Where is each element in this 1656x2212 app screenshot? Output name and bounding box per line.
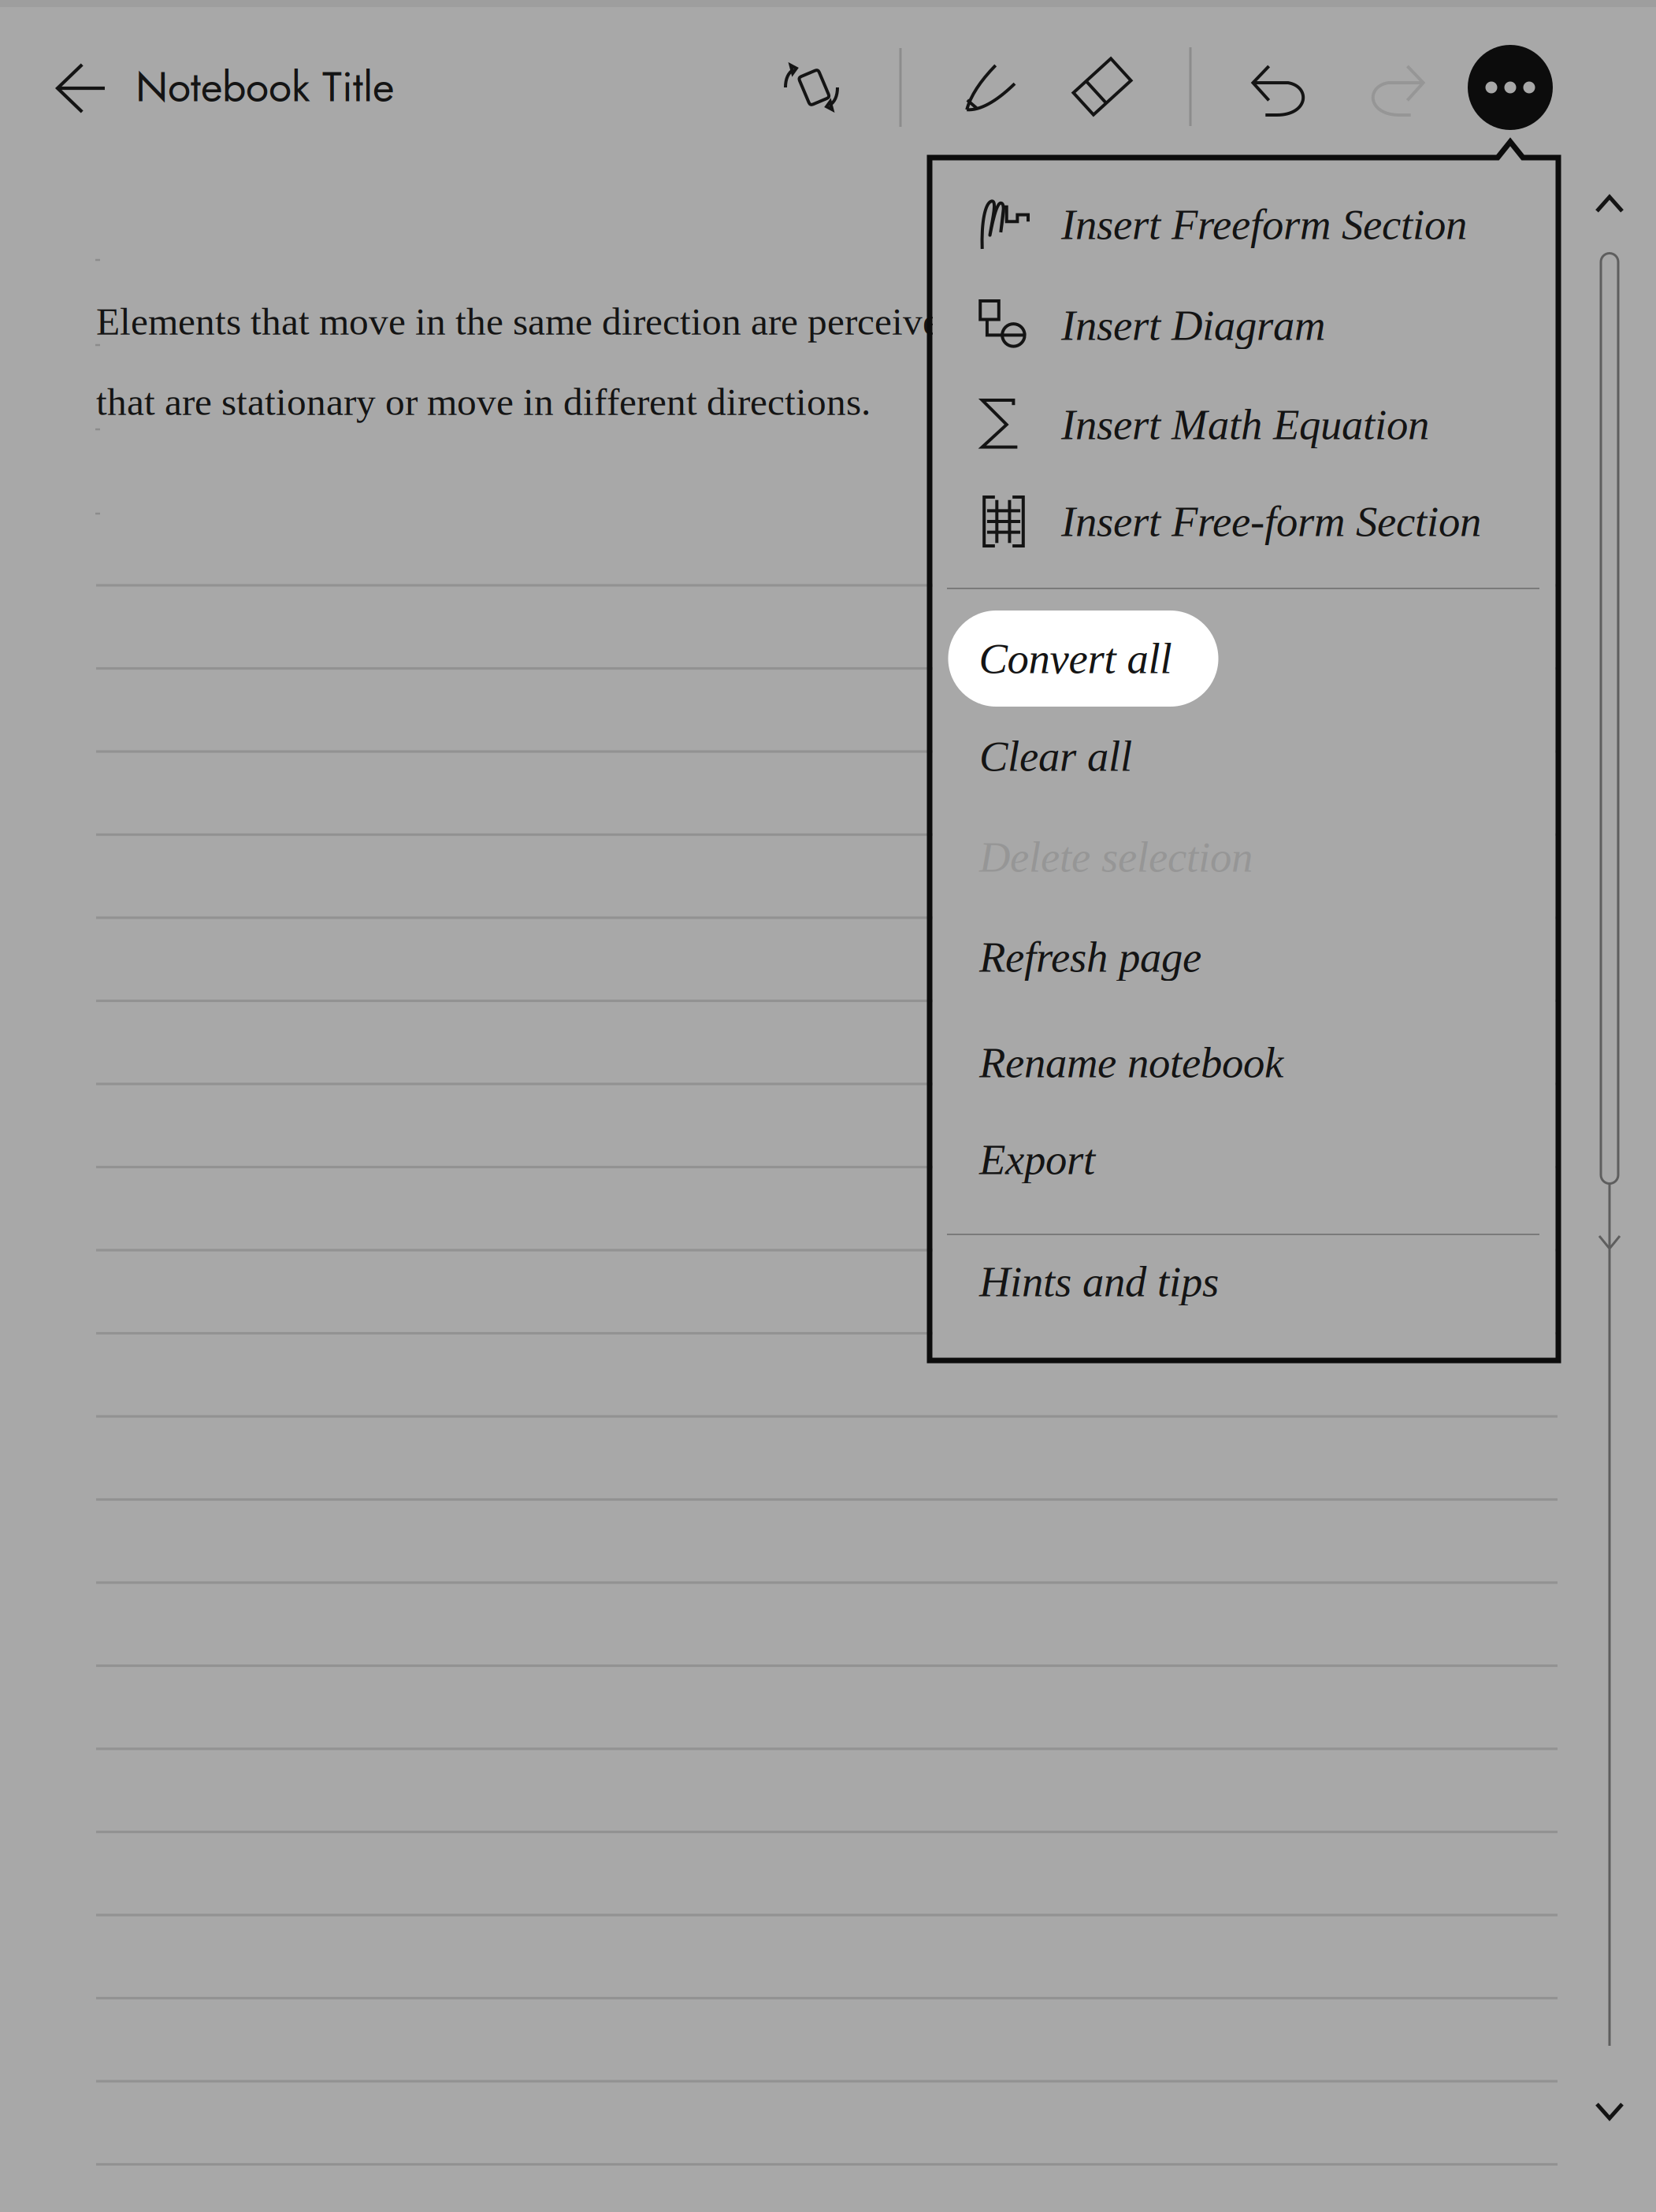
button[interactable]: Hints and tips: [979, 1235, 1531, 1328]
button[interactable]: Clear all: [979, 710, 1531, 803]
staticText: Clear all: [979, 732, 1132, 780]
staticText: Delete selection: [979, 833, 1253, 881]
button[interactable]: Insert Math Equation: [979, 378, 1531, 471]
button[interactable]: Insert Free-form Section: [979, 475, 1531, 568]
button[interactable]: Export: [979, 1113, 1531, 1206]
staticText: Insert Diagram: [1061, 301, 1325, 349]
staticText: Refresh page: [979, 933, 1201, 981]
staticText: Insert Freeform Section: [1061, 201, 1467, 248]
button[interactable]: Convert all: [948, 611, 1218, 707]
button[interactable]: Rename notebook: [979, 1016, 1531, 1109]
staticText: Insert Free-form Section: [1061, 498, 1481, 545]
staticText: Insert Math Equation: [1061, 401, 1429, 448]
button[interactable]: Pen: [946, 47, 1033, 129]
button[interactable]: Delete selection: [979, 811, 1531, 904]
button[interactable]: Insert Freeform Section: [979, 178, 1531, 271]
button[interactable]: Rotate screen: [769, 46, 854, 129]
button[interactable]: Eraser: [1057, 42, 1147, 132]
staticText: Hints and tips: [979, 1258, 1219, 1305]
staticText: Notebook Title: [136, 56, 394, 117]
button[interactable]: Refresh page: [979, 911, 1531, 1004]
button[interactable]: Redo: [1352, 50, 1440, 131]
staticText: Export: [979, 1136, 1095, 1183]
button[interactable]: More options: [1468, 45, 1553, 130]
button[interactable]: Undo: [1236, 50, 1324, 131]
staticText: that are stationary or move in different…: [96, 380, 871, 423]
staticText: Convert all: [979, 635, 1172, 682]
button[interactable]: Notebook Title: [136, 49, 403, 124]
button[interactable]: Scroll up: [1570, 170, 1649, 238]
staticText: Elements that move in the same direction…: [96, 300, 960, 343]
button[interactable]: Scroll down: [1570, 2077, 1649, 2145]
staticText: Rename notebook: [979, 1039, 1283, 1086]
button[interactable]: Back: [42, 49, 121, 128]
button[interactable]: Insert Diagram: [979, 279, 1531, 372]
